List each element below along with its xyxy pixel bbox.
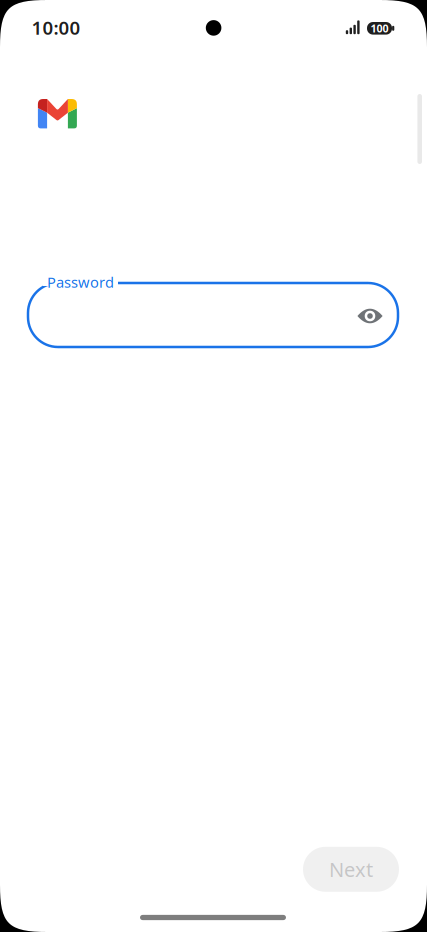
staticText: 10:00 [31,15,80,40]
staticText: Next [329,856,373,883]
staticText: Password [47,272,114,292]
button[interactable]: Show password [348,294,392,338]
button[interactable]: Next [303,847,399,892]
staticText: 100 [370,21,388,35]
